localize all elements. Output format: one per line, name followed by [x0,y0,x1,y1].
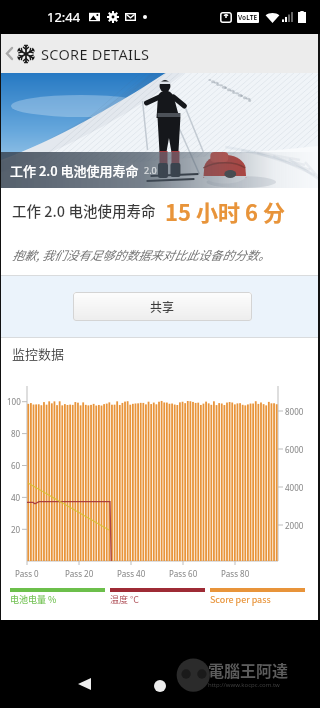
staticText: Pass 20 [65,568,94,579]
staticText: Score per pass [210,593,271,606]
button[interactable]: Home [140,666,180,706]
staticText: 4000 [285,482,304,493]
staticText: Pass 60 [169,568,198,579]
staticText: Pass 0 [15,568,39,579]
staticText: 8000 [285,406,304,417]
staticText: 100 [7,396,21,407]
staticText: 监控数据 [12,344,65,363]
staticText: 80 [11,428,21,439]
staticText: 温度 °C [110,593,140,606]
staticText: 電腦王阿達 [208,658,289,681]
staticText: VoLTE [238,13,258,22]
staticText: 60 [11,460,21,471]
staticText: 15 小时 6 分 [165,195,285,227]
staticText: 6000 [285,444,304,455]
staticText: 工作 2.0 电池使用寿命 [10,161,139,180]
button[interactable]: 共享 [73,292,252,321]
staticText: 40 [11,492,21,503]
button[interactable]: Back [64,664,104,704]
staticText: 2000 [285,520,304,531]
button[interactable]: Back [1,34,17,73]
staticText: 电池电量 % [10,593,57,606]
staticText: 20 [11,524,21,535]
staticText: SCORE DETAILS [41,44,150,64]
staticText: 抱歉, 我们没有足够的数据来对比此设备的分数。 [12,246,271,263]
staticText: 12:44 [47,8,81,26]
staticText: Pass 40 [117,568,146,579]
staticText: 2.0 [144,164,157,176]
staticText: Pass 80 [221,568,250,579]
staticText: 共享 [150,298,175,315]
staticText: http://www.kocpc.com.tw [208,681,280,689]
staticText: 工作 2.0 电池使用寿命 [12,200,156,221]
